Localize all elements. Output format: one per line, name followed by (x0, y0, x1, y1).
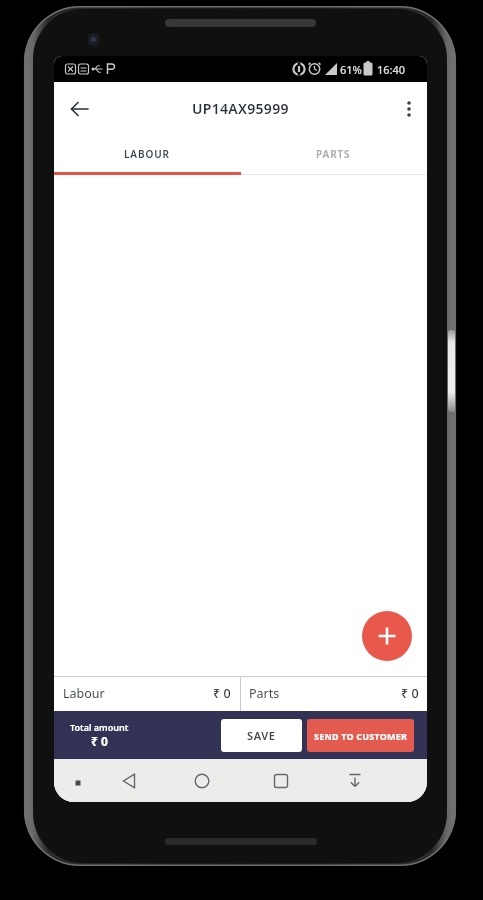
staticText: Total amount (70, 721, 129, 733)
button[interactable]: SAVE (221, 719, 302, 752)
button[interactable] (148, 759, 241, 802)
button[interactable] (54, 759, 148, 802)
button[interactable] (334, 759, 427, 802)
staticText: 16:40 (377, 62, 406, 77)
staticText: ₹ 0 (91, 733, 108, 749)
staticText: ₹ 0 (213, 685, 231, 702)
button[interactable]: LABOUR (54, 135, 240, 172)
staticText: SEND TO CUSTOMER (314, 730, 408, 742)
button[interactable] (241, 759, 334, 802)
staticText: PARTS (316, 147, 351, 161)
button[interactable]: SEND TO CUSTOMER (307, 719, 414, 752)
button[interactable] (362, 611, 412, 661)
staticText: Parts (249, 685, 280, 702)
staticText: UP14AX95999 (192, 99, 289, 118)
button[interactable] (62, 91, 98, 127)
staticText: ₹ 0 (401, 685, 419, 702)
staticText: SAVE (247, 728, 276, 743)
button[interactable]: PARTS (240, 135, 427, 172)
staticText: Labour (63, 685, 105, 702)
staticText: LABOUR (124, 147, 170, 161)
button[interactable] (394, 94, 424, 124)
staticText: 61% (340, 62, 362, 77)
